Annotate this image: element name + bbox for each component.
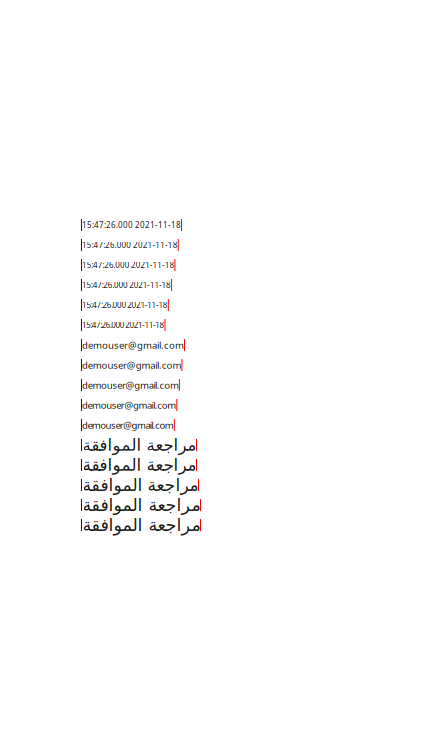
staticText: مراجعة الموافقة <box>82 475 198 495</box>
staticText: demouser@gmail.com <box>82 338 184 352</box>
staticText: 15:47:26.000 2021-11-18 <box>82 260 174 270</box>
staticText: 15:47:26.000 2021-11-18 <box>82 280 171 290</box>
staticText: مراجعة الموافقة <box>82 455 196 475</box>
staticText: مراجعة الموافقة <box>82 435 196 455</box>
staticText: مراجعة الموافقة <box>82 495 200 515</box>
staticText: 15:47:26.000 2021-11-18 <box>82 300 168 310</box>
staticText: demouser@gmail.com <box>82 358 181 372</box>
staticText: مراجعة الموافقة <box>82 515 200 535</box>
staticText: 15:47:26.000 2021-11-18 <box>82 320 164 330</box>
staticText: 15:47:26.000 2021-11-18 <box>82 220 181 230</box>
staticText: demouser@gmail.com <box>82 398 176 412</box>
staticText: demouser@gmail.com <box>82 378 179 392</box>
staticText: 15:47:26.000 2021-11-18 <box>82 240 178 250</box>
staticText: demouser@gmail.com <box>82 418 174 432</box>
